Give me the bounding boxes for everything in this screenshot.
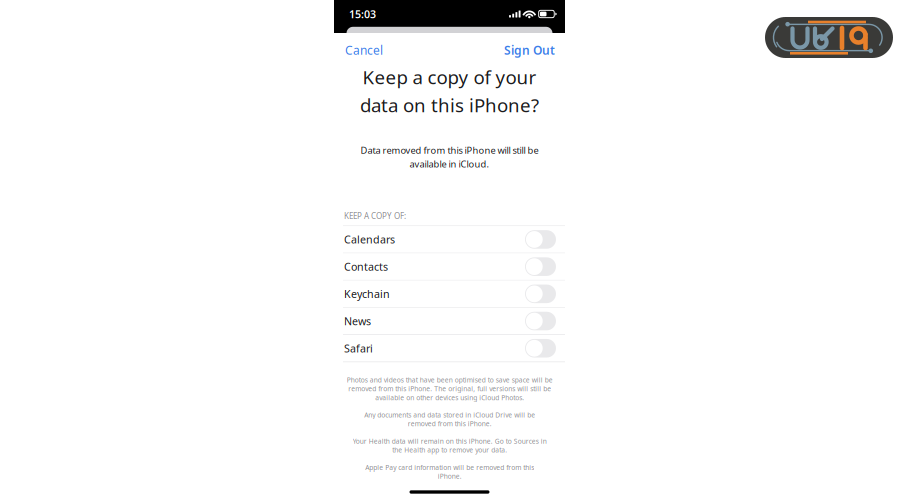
button[interactable]: Sign Out xyxy=(498,37,565,63)
staticText: Data removed from this iPhone will still… xyxy=(360,144,538,156)
staticText: Sign Out xyxy=(504,42,555,58)
staticText: Cancel xyxy=(345,42,383,58)
staticText: Apple Pay card information will be remov… xyxy=(365,463,534,481)
staticText: Keep a copy of your xyxy=(362,65,536,89)
staticText: Photos and videos that have been optimis… xyxy=(346,375,552,402)
staticText: Contacts xyxy=(344,260,388,274)
staticText: Keychain xyxy=(344,287,390,301)
button[interactable]: Cancel xyxy=(334,37,389,63)
staticText: News xyxy=(344,314,371,328)
staticText: data on this iPhone? xyxy=(360,92,539,117)
button[interactable]: Contacts xyxy=(334,253,565,281)
button[interactable]: Keychain xyxy=(334,281,565,308)
button[interactable]: Safari xyxy=(334,335,565,362)
staticText: Calendars xyxy=(344,232,395,247)
staticText: available in iCloud. xyxy=(409,158,489,170)
staticText: 15:03 xyxy=(349,7,376,21)
staticText: Safari xyxy=(344,341,373,355)
staticText: KEEP A COPY OF: xyxy=(344,211,406,221)
staticText: Any documents and data stored in iCloud … xyxy=(364,410,535,428)
staticText: Your Health data will remain on this iPh… xyxy=(352,437,546,454)
button[interactable]: Calendars xyxy=(334,226,565,253)
button[interactable]: News xyxy=(334,308,565,335)
